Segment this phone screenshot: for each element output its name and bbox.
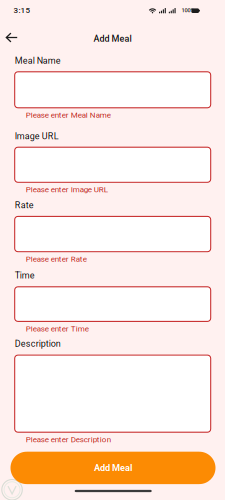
staticText: Rate	[15, 200, 34, 210]
staticText: Please enter Description	[26, 435, 111, 444]
staticText: Please enter Time	[26, 324, 89, 333]
staticText: Add Meal	[93, 33, 131, 44]
staticText: Please enter Image URL	[26, 185, 108, 194]
staticText: Please enter Rate	[26, 254, 87, 264]
staticText: Description	[15, 338, 61, 349]
staticText: Add Meal	[94, 462, 132, 473]
staticText: 100%	[182, 7, 195, 14]
button[interactable]: Add Meal	[10, 452, 215, 484]
staticText: Time	[15, 270, 35, 281]
staticText: 3:15	[13, 5, 30, 15]
button[interactable]: Back	[5, 26, 31, 48]
staticText: Meal Name	[15, 55, 61, 66]
staticText: Please enter Meal Name	[26, 110, 111, 120]
staticText: Image URL	[15, 131, 59, 141]
